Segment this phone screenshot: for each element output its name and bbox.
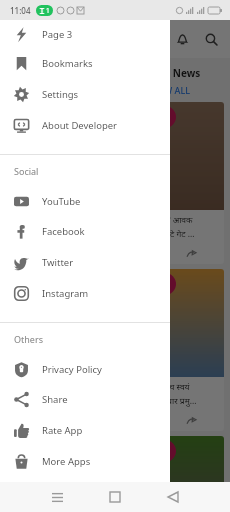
button[interactable]: Bookmarks — [0, 48, 170, 79]
staticText: Privacy Policy — [42, 363, 102, 376]
staticText: Rate App — [42, 424, 83, 437]
staticText: Others — [14, 333, 43, 345]
staticText: Settings — [42, 88, 79, 101]
button[interactable]: Facebook — [0, 216, 170, 247]
button[interactable]: Back — [160, 484, 186, 510]
button[interactable]: More Apps — [0, 446, 170, 477]
button[interactable]: About Developer — [0, 110, 170, 141]
staticText: 11:04 — [10, 5, 31, 16]
staticText: 1 — [46, 6, 50, 15]
staticText: …ीच स्वयं — [155, 381, 190, 393]
staticText: Instagram — [42, 287, 89, 300]
button[interactable]: …ीच स्वयं — [150, 269, 224, 431]
button[interactable]: Rate App — [0, 415, 170, 446]
staticText: VIEW ALL — [150, 84, 191, 96]
button[interactable]: Settings — [0, 79, 170, 110]
staticText: …छोटे गेट … — [155, 228, 195, 240]
button[interactable]: Twitter — [0, 247, 170, 278]
staticText: YouTube — [42, 195, 81, 208]
button[interactable]: Share — [184, 247, 198, 261]
button[interactable]: Share — [0, 384, 170, 415]
staticText: Twitter — [42, 256, 74, 269]
staticText: Bookmarks — [42, 57, 93, 70]
button[interactable]: Home — [102, 484, 128, 510]
staticText: Page 3 — [42, 28, 73, 41]
button[interactable]: Page 3 — [0, 20, 170, 48]
button[interactable]: Share — [184, 414, 198, 428]
button[interactable]: Exit — [0, 477, 170, 508]
staticText: Exit — [42, 486, 59, 499]
button[interactable]: Privacy Policy — [0, 354, 170, 384]
staticText: Facebook — [42, 225, 85, 238]
button[interactable]: Instagram — [0, 278, 170, 309]
staticText: Share — [42, 393, 68, 406]
staticText: About Developer — [42, 119, 118, 132]
button[interactable]: Search — [200, 28, 222, 50]
button[interactable]: YouTube — [0, 186, 170, 216]
button[interactable]: … — [150, 436, 224, 512]
button[interactable]: Notifications — [171, 28, 193, 50]
button[interactable]: Recents — [44, 484, 70, 510]
staticText: Live News — [150, 66, 201, 80]
staticText: …प्रचार प्रमु… — [155, 395, 197, 407]
staticText: More Apps — [42, 455, 91, 468]
staticText: Social — [14, 165, 39, 177]
staticText: …की आवक — [155, 214, 193, 226]
button[interactable]: …की आवक — [150, 102, 224, 264]
